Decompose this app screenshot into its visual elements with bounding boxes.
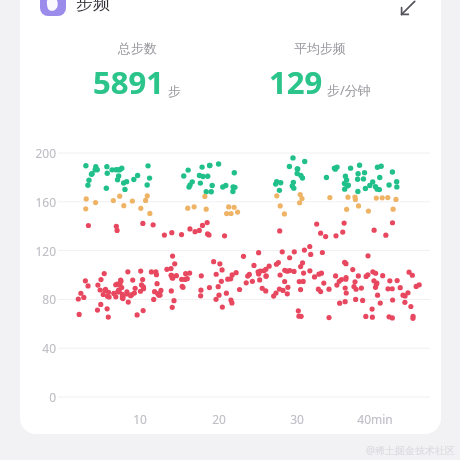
staticText: 步/分钟 [327, 81, 371, 99]
staticText: 129 [269, 61, 323, 103]
staticText: 0 [20, 389, 56, 405]
staticText: 平均步频 [294, 40, 346, 56]
staticText: 160 [20, 194, 56, 210]
button[interactable]: Expand chart [391, 0, 425, 25]
staticText: 总步数 [118, 40, 157, 56]
staticText: @稀土掘金技术社区 [366, 443, 455, 457]
staticText: 20 [193, 411, 245, 427]
staticText: 步 [168, 83, 181, 99]
staticText: 30 [271, 411, 323, 427]
staticText: 80 [20, 291, 56, 307]
staticText: 40min [349, 411, 401, 427]
staticText: 5891 [93, 61, 164, 103]
staticText: 10 [114, 411, 166, 427]
staticText: 200 [20, 145, 56, 161]
staticText: 步频 [76, 0, 110, 14]
staticText: 40 [20, 340, 56, 356]
button[interactable]: 平均步频 [235, 40, 405, 103]
button[interactable]: 总步数 [52, 40, 222, 103]
staticText: 120 [20, 243, 56, 259]
button[interactable]: 步频 [38, 0, 112, 18]
